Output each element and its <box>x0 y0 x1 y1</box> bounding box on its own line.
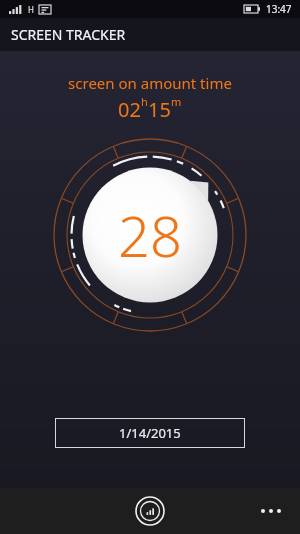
staticText: m <box>171 94 182 109</box>
staticText: H <box>28 4 34 15</box>
staticText: 02 <box>118 96 141 123</box>
staticText: 15 <box>148 96 171 123</box>
button[interactable]: Statistics <box>133 494 167 528</box>
staticText: SCREEN TRACKER <box>11 25 126 44</box>
staticText: h <box>141 94 148 109</box>
staticText: 13:47 <box>266 2 292 16</box>
staticText: 1/14/2015 <box>119 424 181 442</box>
button[interactable]: 1/14/2015 <box>55 418 245 448</box>
button[interactable]: More options <box>254 496 288 526</box>
staticText: 28 <box>118 197 182 273</box>
staticText: screen on amount time <box>68 73 232 93</box>
